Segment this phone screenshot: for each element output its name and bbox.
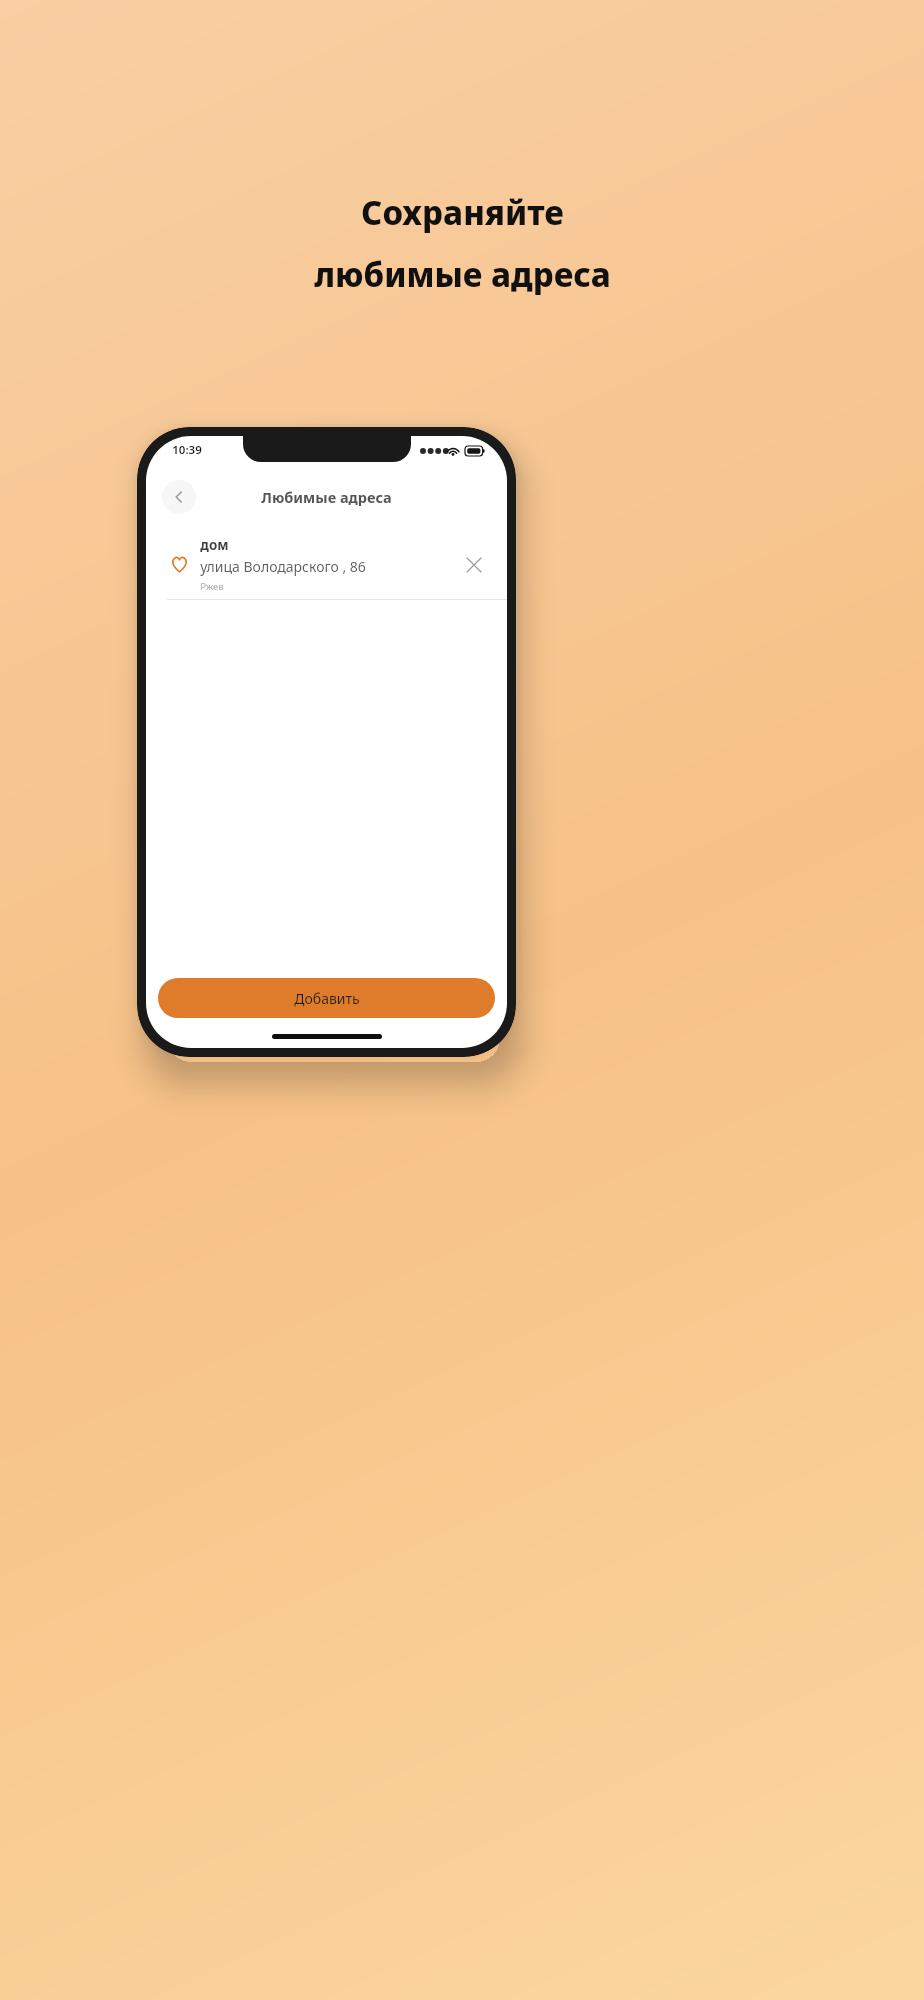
staticText: 10:39 — [172, 442, 202, 458]
staticText: Сохраняйте — [361, 190, 564, 235]
staticText: дом — [200, 536, 229, 554]
staticText: любимые адреса — [314, 252, 611, 297]
button[interactable]: Добавить — [158, 978, 495, 1018]
staticText: улица Володарского , 86 — [200, 557, 366, 576]
staticText: Ржев — [200, 580, 224, 593]
staticText: Любимые адреса — [261, 487, 392, 507]
button[interactable]: дом — [146, 534, 507, 599]
button[interactable]: Back — [162, 480, 196, 514]
button[interactable]: Remove — [457, 548, 491, 582]
staticText: Добавить — [294, 989, 360, 1008]
